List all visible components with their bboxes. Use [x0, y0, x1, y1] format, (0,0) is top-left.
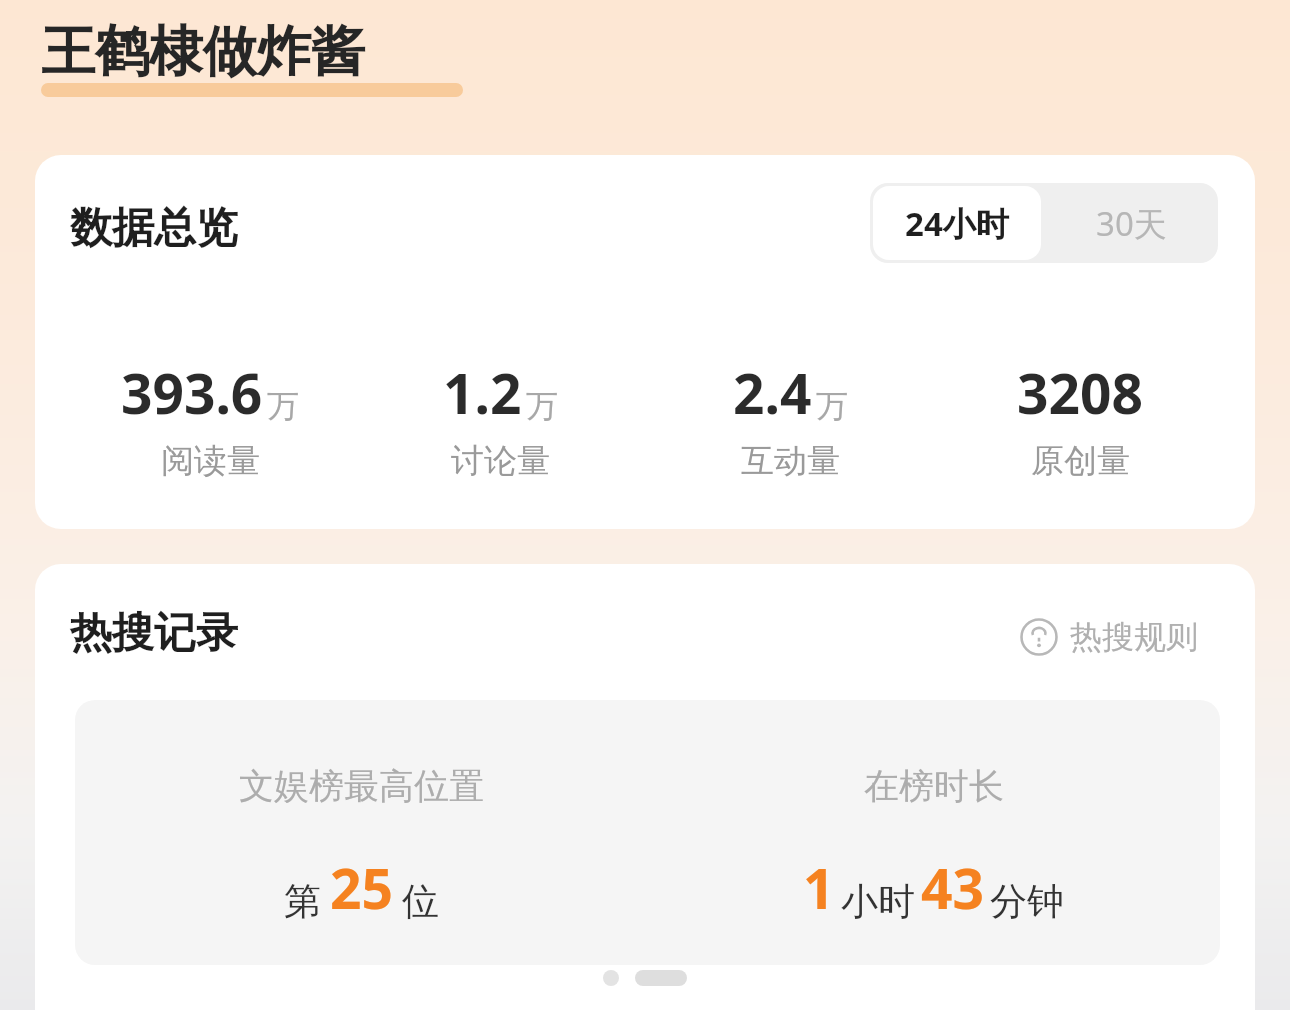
button[interactable]: 3208 [935, 355, 1225, 482]
staticText: 原创量 [1031, 440, 1130, 482]
staticText: 文娱榜最高位置 [239, 764, 484, 808]
staticText: 25 [330, 850, 393, 925]
staticText: 讨论量 [451, 440, 550, 482]
staticText: 1.2 [443, 355, 522, 430]
staticText: 2.4 [733, 355, 812, 430]
button[interactable]: 24小时 [873, 186, 1041, 260]
button[interactable]: 热搜规则 [1020, 612, 1198, 662]
staticText: 在榜时长 [864, 764, 1004, 808]
staticText: 3208 [1017, 355, 1143, 430]
staticText: 位 [402, 878, 439, 925]
button[interactable]: 文娱榜最高位置 [75, 700, 647, 925]
staticText: 互动量 [741, 440, 840, 482]
staticText: 393.6 [121, 355, 263, 430]
staticText: 小时 [841, 878, 915, 925]
button[interactable]: 393.6 [65, 355, 355, 482]
staticText: 43 [921, 850, 984, 925]
staticText: 王鹤棣做炸酱 [41, 18, 365, 86]
button[interactable]: 30天 [1044, 183, 1218, 263]
staticText: 万 [267, 386, 299, 426]
button[interactable]: 1.2 [355, 355, 645, 482]
staticText: 24小时 [905, 201, 1009, 246]
staticText: 1 [803, 850, 835, 925]
button[interactable]: 在榜时长 [647, 700, 1220, 925]
staticText: 万 [526, 386, 558, 426]
staticText: 万 [816, 386, 848, 426]
staticText: 第 [284, 878, 321, 925]
staticText: 热搜规则 [1070, 617, 1198, 657]
staticText: 30天 [1096, 201, 1167, 246]
staticText: 热搜记录 [70, 607, 238, 660]
staticText: 数据总览 [70, 202, 238, 255]
button[interactable]: 2.4 [645, 355, 935, 482]
staticText: 阅读量 [161, 440, 260, 482]
staticText: 分钟 [990, 878, 1064, 925]
